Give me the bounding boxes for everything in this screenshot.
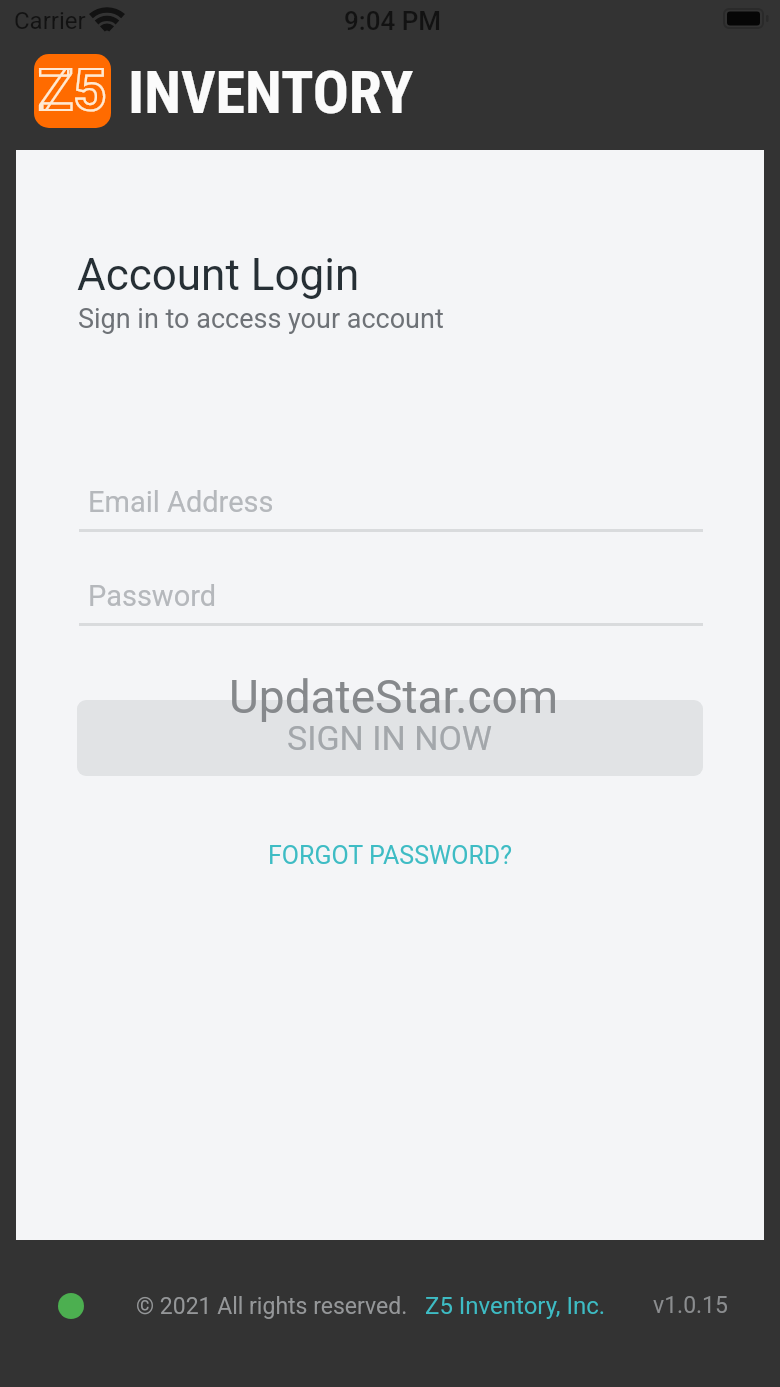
staticText: UpdateStar.com bbox=[229, 670, 559, 724]
staticText: INVENTORY bbox=[128, 57, 414, 127]
staticText: Carrier bbox=[14, 7, 86, 35]
staticText: Sign in to access your account bbox=[78, 303, 444, 335]
button[interactable]: Z5 Inventory logo bbox=[34, 54, 111, 128]
button[interactable]: FORGOT PASSWORD? bbox=[258, 836, 523, 875]
staticText: Password bbox=[88, 579, 217, 613]
button[interactable]: SIGN IN NOW bbox=[77, 700, 703, 776]
other: Battery bbox=[723, 8, 769, 29]
staticText: Z5 bbox=[38, 56, 107, 124]
button[interactable]: Password bbox=[79, 579, 703, 626]
staticText: Z5 Inventory, Inc. bbox=[425, 1292, 606, 1320]
staticText: 9:04 PM bbox=[344, 6, 441, 36]
staticText: v1.0.15 bbox=[653, 1292, 728, 1319]
button[interactable]: Z5 Inventory, Inc. bbox=[425, 1292, 606, 1320]
staticText: Account Login bbox=[77, 249, 360, 301]
staticText: Email Address bbox=[88, 485, 274, 519]
other: Wifi bbox=[92, 12, 122, 34]
staticText: © 2021 All rights reserved. bbox=[136, 1293, 408, 1320]
button[interactable]: Email Address bbox=[79, 485, 703, 532]
staticText: SIGN IN NOW bbox=[287, 718, 493, 758]
staticText: FORGOT PASSWORD? bbox=[268, 841, 513, 870]
